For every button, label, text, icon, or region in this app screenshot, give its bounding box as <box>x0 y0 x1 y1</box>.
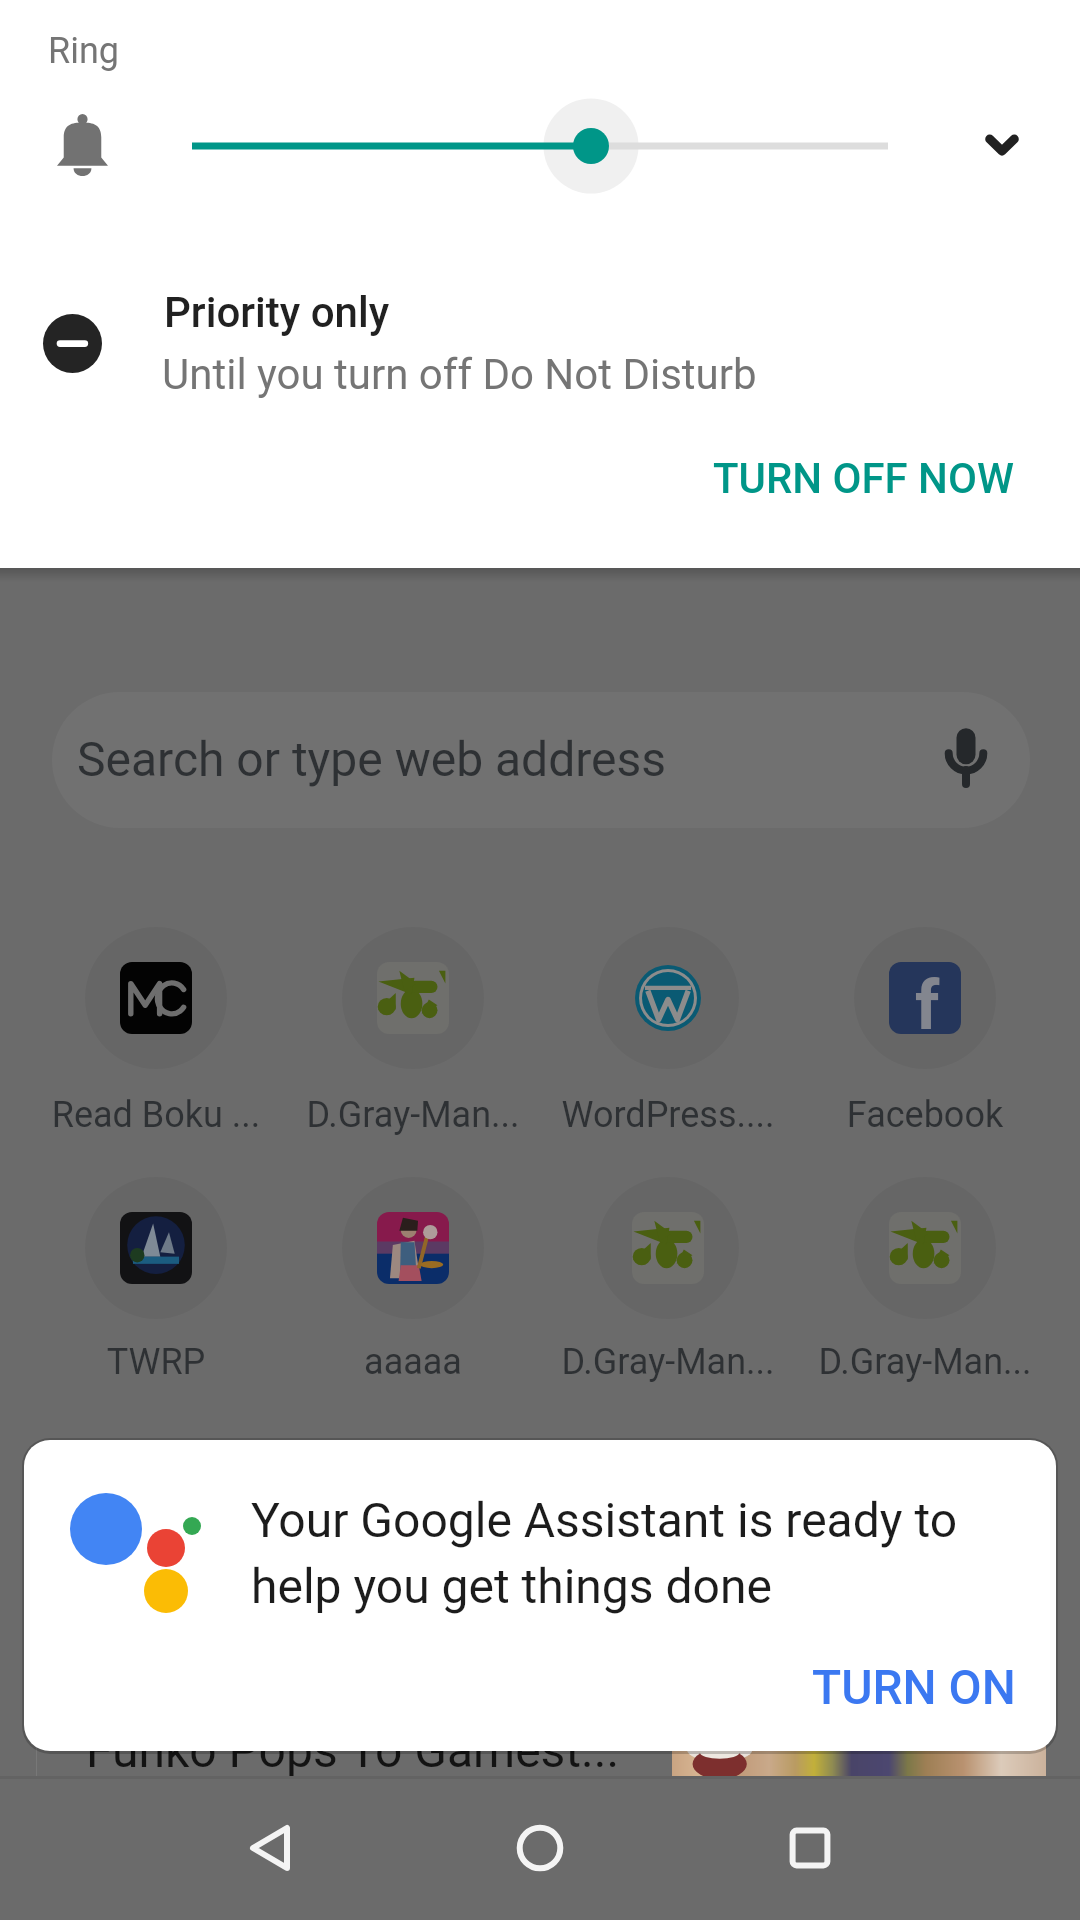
button[interactable] <box>85 1177 227 1319</box>
button[interactable] <box>85 927 227 1069</box>
button[interactable]: Home <box>450 1776 630 1920</box>
staticText: Priority only <box>164 288 390 337</box>
button[interactable] <box>854 1177 996 1319</box>
staticText: WordPress.... <box>540 1094 796 1136</box>
staticText: Read Boku ... <box>28 1094 284 1136</box>
button[interactable]: Back <box>180 1776 360 1920</box>
button[interactable] <box>342 927 484 1069</box>
staticText: TURN ON <box>812 1659 1016 1715</box>
button[interactable] <box>597 927 739 1069</box>
button[interactable]: Expand volume controls <box>962 105 1042 185</box>
button[interactable]: Recents <box>720 1776 900 1920</box>
button[interactable]: TURN OFF NOW <box>689 440 1038 517</box>
staticText: Until you turn off Do Not Disturb <box>162 350 757 399</box>
button[interactable]: Search or type web address <box>52 692 1030 828</box>
staticText: TWRP <box>28 1341 284 1383</box>
staticText: Funko Pops To Gamest... <box>86 1722 620 1778</box>
button[interactable]: TURN ON <box>790 1645 1038 1729</box>
button[interactable] <box>342 1177 484 1319</box>
staticText: Your Google Assistant is ready to help y… <box>251 1492 958 1615</box>
staticText: D.Gray-Man... <box>797 1341 1053 1383</box>
button[interactable] <box>140 90 940 200</box>
staticText: Facebook <box>797 1094 1053 1136</box>
button[interactable] <box>597 1177 739 1319</box>
other: Ringer volume <box>57 114 108 175</box>
other: Voice search <box>916 710 1016 810</box>
button[interactable] <box>854 927 996 1069</box>
button[interactable]: Your Google Assistant is ready to help y… <box>24 1440 1056 1751</box>
staticText: Search or type web address <box>77 731 667 787</box>
staticText: D.Gray-Man... <box>540 1341 796 1383</box>
staticText: f <box>915 966 940 1034</box>
staticText: Ring <box>48 30 120 72</box>
staticText: TURN OFF NOW <box>713 454 1014 503</box>
staticText: aaaaa <box>285 1341 541 1383</box>
staticText: D.Gray-Man... <box>285 1094 541 1136</box>
